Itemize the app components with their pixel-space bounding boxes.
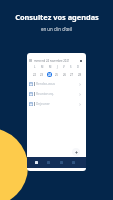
button[interactable]: Tab 1 bbox=[34, 160, 39, 165]
button[interactable]: Tab 2 bbox=[46, 160, 51, 165]
button[interactable]: Create event bbox=[72, 148, 80, 156]
button[interactable]: 27 bbox=[69, 72, 74, 77]
staticText: 27 bbox=[70, 73, 73, 77]
staticText: M bbox=[41, 65, 44, 69]
staticText: mercredi 24 novembre 2021 bbox=[34, 59, 70, 63]
button[interactable]: 22 bbox=[32, 72, 37, 77]
staticText: Dejeuner bbox=[36, 102, 50, 106]
button[interactable]: Rendez-vous bbox=[29, 79, 81, 89]
staticText: 22 bbox=[33, 73, 36, 77]
staticText: en un clin d'œil bbox=[41, 26, 72, 32]
button[interactable]: Reunion eq. bbox=[29, 89, 81, 99]
staticText: 23 bbox=[40, 73, 43, 77]
staticText: Rendez-vous bbox=[36, 82, 56, 86]
button[interactable]: 23 bbox=[39, 72, 44, 77]
button[interactable]: Tab 4 bbox=[71, 160, 76, 165]
staticText: Reunion eq. bbox=[36, 92, 54, 96]
staticText: 25 bbox=[55, 73, 58, 77]
staticText: V bbox=[63, 65, 65, 69]
staticText: J bbox=[57, 65, 58, 69]
staticText: L bbox=[34, 65, 36, 69]
button[interactable]: 26 bbox=[62, 72, 67, 77]
staticText: 28 bbox=[78, 73, 81, 77]
staticText: S bbox=[70, 65, 72, 69]
staticText: M bbox=[49, 65, 52, 69]
button[interactable]: 28 bbox=[77, 72, 82, 77]
staticText: Consultez vos agendas bbox=[15, 12, 99, 22]
button[interactable]: Tab 3 bbox=[59, 160, 64, 165]
staticText: 26 bbox=[63, 73, 66, 77]
button[interactable]: 24 bbox=[47, 72, 52, 77]
staticText: 24 bbox=[48, 73, 51, 77]
button[interactable]: Dejeuner bbox=[29, 99, 81, 109]
staticText: D bbox=[77, 65, 79, 69]
button[interactable]: 25 bbox=[54, 72, 59, 77]
